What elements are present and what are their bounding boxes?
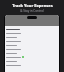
staticText: Track Your Expenses — [12, 3, 53, 8]
button[interactable] — [6, 27, 58, 31]
button[interactable] — [6, 51, 58, 55]
button[interactable] — [6, 63, 58, 67]
button[interactable] — [6, 39, 58, 43]
button[interactable] — [6, 31, 58, 35]
button[interactable] — [6, 43, 58, 47]
button[interactable] — [6, 55, 58, 59]
button[interactable] — [6, 35, 58, 39]
button[interactable] — [6, 47, 58, 51]
button[interactable] — [6, 59, 58, 63]
staticText: & Stay in Control — [20, 9, 44, 13]
